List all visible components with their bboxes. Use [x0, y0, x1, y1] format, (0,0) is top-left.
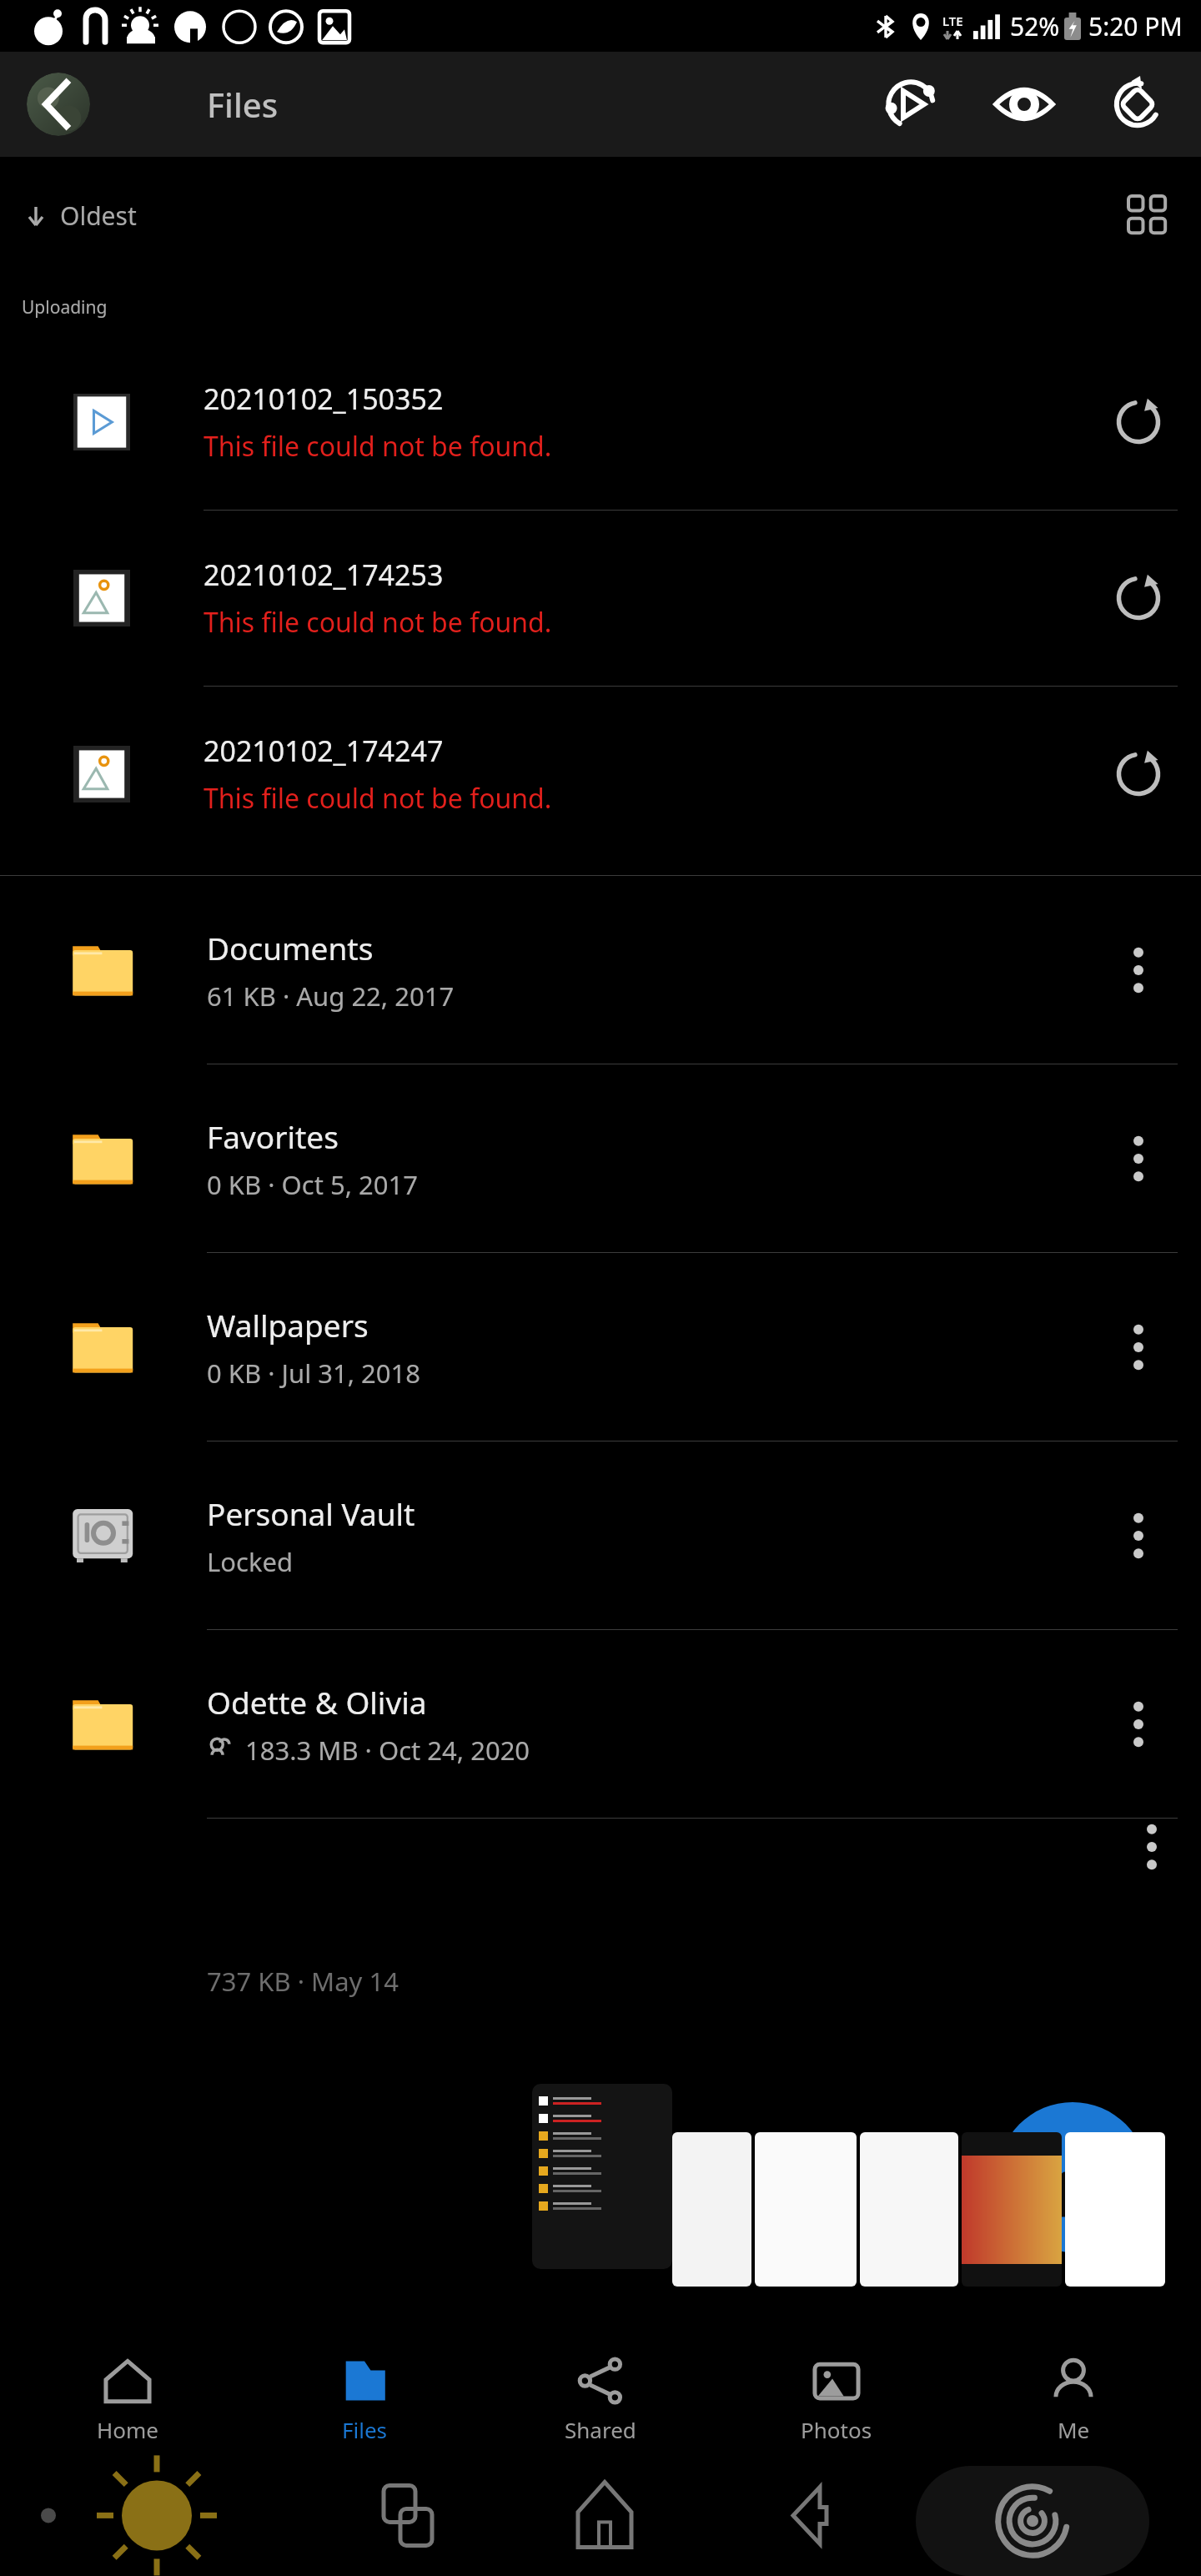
- button[interactable]: Odette & Olivia: [0, 1630, 1201, 1819]
- button[interactable]: 20210102_174247: [0, 687, 1201, 862]
- staticText: Locked: [207, 1544, 293, 1579]
- staticText: LTE: [942, 13, 963, 29]
- button[interactable]: Oldest: [17, 190, 143, 241]
- button[interactable]: Me: [965, 2332, 1182, 2466]
- staticText: 20210102_174253: [204, 556, 444, 594]
- staticText: 52%: [1010, 9, 1060, 43]
- staticText: This file could not be found.: [204, 604, 552, 641]
- staticText: This file could not be found.: [204, 428, 552, 465]
- button[interactable]: More options: [1076, 1441, 1201, 1629]
- staticText: Odette & Olivia: [207, 1681, 427, 1723]
- button[interactable]: Preview: [986, 66, 1063, 143]
- staticText: Files: [207, 82, 279, 127]
- button[interactable]: Files: [256, 2332, 473, 2466]
- staticText: 5:20 PM: [1088, 9, 1183, 43]
- staticText: 0 KB · Jul 31, 2018: [207, 1356, 420, 1391]
- button[interactable]: Favorites: [0, 1064, 1201, 1253]
- button[interactable]: 20210102_174253: [0, 511, 1201, 687]
- staticText: 183.3 MB · Oct 24, 2020: [245, 1733, 530, 1768]
- button[interactable]: Documents: [0, 876, 1201, 1064]
- staticText: 737 KB · May 14: [207, 1964, 399, 1999]
- staticText: Favorites: [207, 1115, 339, 1157]
- staticText: 61 KB · Aug 22, 2017: [207, 979, 455, 1014]
- button[interactable]: Personal Vault: [0, 1441, 1201, 1630]
- staticText: Documents: [207, 927, 374, 969]
- button[interactable]: More options: [1076, 876, 1201, 1064]
- staticText: Files: [342, 2415, 388, 2444]
- staticText: 20210102_150352: [204, 380, 444, 418]
- staticText: Home: [97, 2415, 158, 2444]
- staticText: Oldest: [60, 199, 137, 233]
- button[interactable]: Shared: [492, 2332, 709, 2466]
- button[interactable]: More options: [1076, 1253, 1201, 1441]
- staticText: Shared: [565, 2415, 636, 2444]
- staticText: Wallpapers: [207, 1304, 369, 1346]
- staticText: 20210102_174247: [204, 732, 444, 770]
- staticText: Photos: [801, 2415, 872, 2444]
- button[interactable]: More options: [1076, 1630, 1201, 1818]
- staticText: Personal Vault: [207, 1492, 415, 1534]
- button[interactable]: Back: [27, 73, 90, 136]
- button[interactable]: Home: [19, 2332, 236, 2466]
- staticText: Uploading: [22, 295, 108, 319]
- button[interactable]: 737 KB · May 14: [0, 1819, 1201, 2010]
- button[interactable]: Sync: [1099, 66, 1176, 143]
- staticText: Me: [1058, 2415, 1090, 2444]
- button[interactable]: Wallpapers: [0, 1253, 1201, 1441]
- button[interactable]: Photos: [728, 2332, 945, 2466]
- button[interactable]: Slideshow: [872, 66, 949, 143]
- button[interactable]: More options: [1076, 1064, 1201, 1252]
- button[interactable]: Assistant: [916, 2466, 1149, 2576]
- staticText: This file could not be found.: [204, 780, 552, 817]
- staticText: 0 KB · Oct 5, 2017: [207, 1167, 418, 1202]
- button[interactable]: Grid view: [1113, 180, 1183, 250]
- button[interactable]: 20210102_150352: [0, 335, 1201, 511]
